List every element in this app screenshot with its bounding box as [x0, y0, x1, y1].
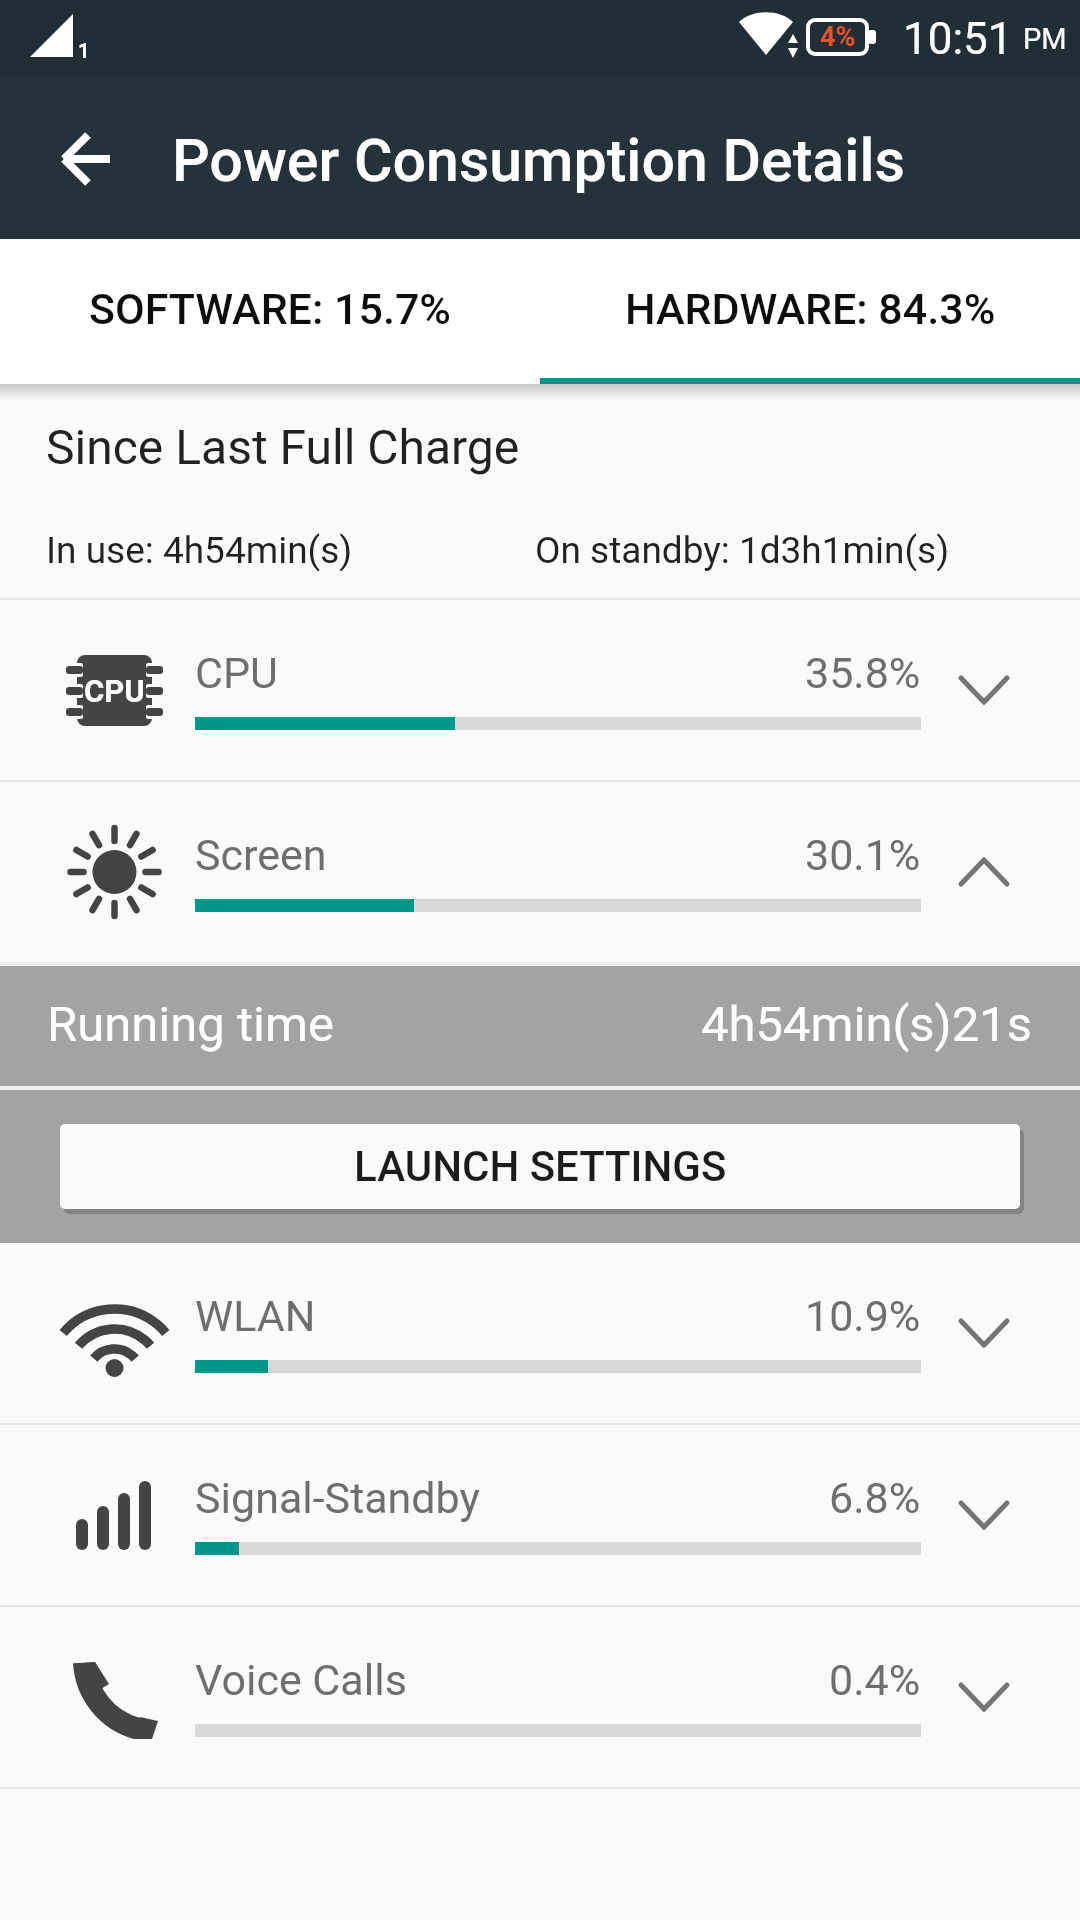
staticText: HARDWARE: 84.3% [625, 284, 996, 334]
button[interactable]: CPU [0, 600, 1080, 780]
button[interactable]: Voice Calls [0, 1607, 1080, 1787]
button[interactable]: Expand WLAN [936, 1243, 1032, 1423]
staticText: 10.9% [805, 1291, 921, 1341]
staticText: Signal-Standby [195, 1473, 480, 1523]
staticText: Voice Calls [195, 1655, 407, 1705]
button[interactable]: WLAN [0, 1243, 1080, 1423]
staticText: 1 [78, 39, 90, 62]
button[interactable]: Expand Voice Calls [936, 1607, 1032, 1787]
button[interactable]: Expand CPU [936, 600, 1032, 780]
staticText: 35.8% [805, 648, 921, 698]
staticText: On standby: 1d3h1min(s) [535, 529, 950, 572]
staticText: 0.4% [829, 1655, 921, 1705]
button[interactable]: LAUNCH SETTINGS [60, 1124, 1020, 1209]
button[interactable]: Screen [0, 782, 1080, 962]
staticText: CPU [195, 648, 278, 698]
button[interactable]: Expand Signal-Standby [936, 1425, 1032, 1605]
button[interactable]: Signal-Standby [0, 1425, 1080, 1605]
staticText: CPU [84, 673, 145, 709]
staticText: In use: 4h54min(s) [46, 529, 353, 572]
button[interactable]: Collapse Screen [936, 782, 1032, 962]
staticText: Since Last Full Charge [46, 419, 520, 475]
staticText: Running time [47, 996, 334, 1053]
staticText: Screen [195, 830, 327, 880]
staticText: PM [1023, 22, 1067, 56]
staticText: LAUNCH SETTINGS [354, 1142, 727, 1191]
button[interactable]: SOFTWARE: 15.7% [0, 239, 540, 378]
staticText: 30.1% [805, 830, 921, 880]
staticText: 10:51 [903, 13, 1013, 65]
staticText: 6.8% [829, 1473, 921, 1523]
button[interactable]: HARDWARE: 84.3% [540, 239, 1080, 378]
staticText: SOFTWARE: 15.7% [89, 284, 451, 334]
staticText: WLAN [195, 1291, 316, 1341]
staticText: Power Consumption Details [172, 126, 905, 195]
button[interactable]: Back [28, 78, 144, 239]
staticText: 4% [820, 21, 856, 53]
staticText: 4h54min(s)21s [701, 996, 1033, 1053]
